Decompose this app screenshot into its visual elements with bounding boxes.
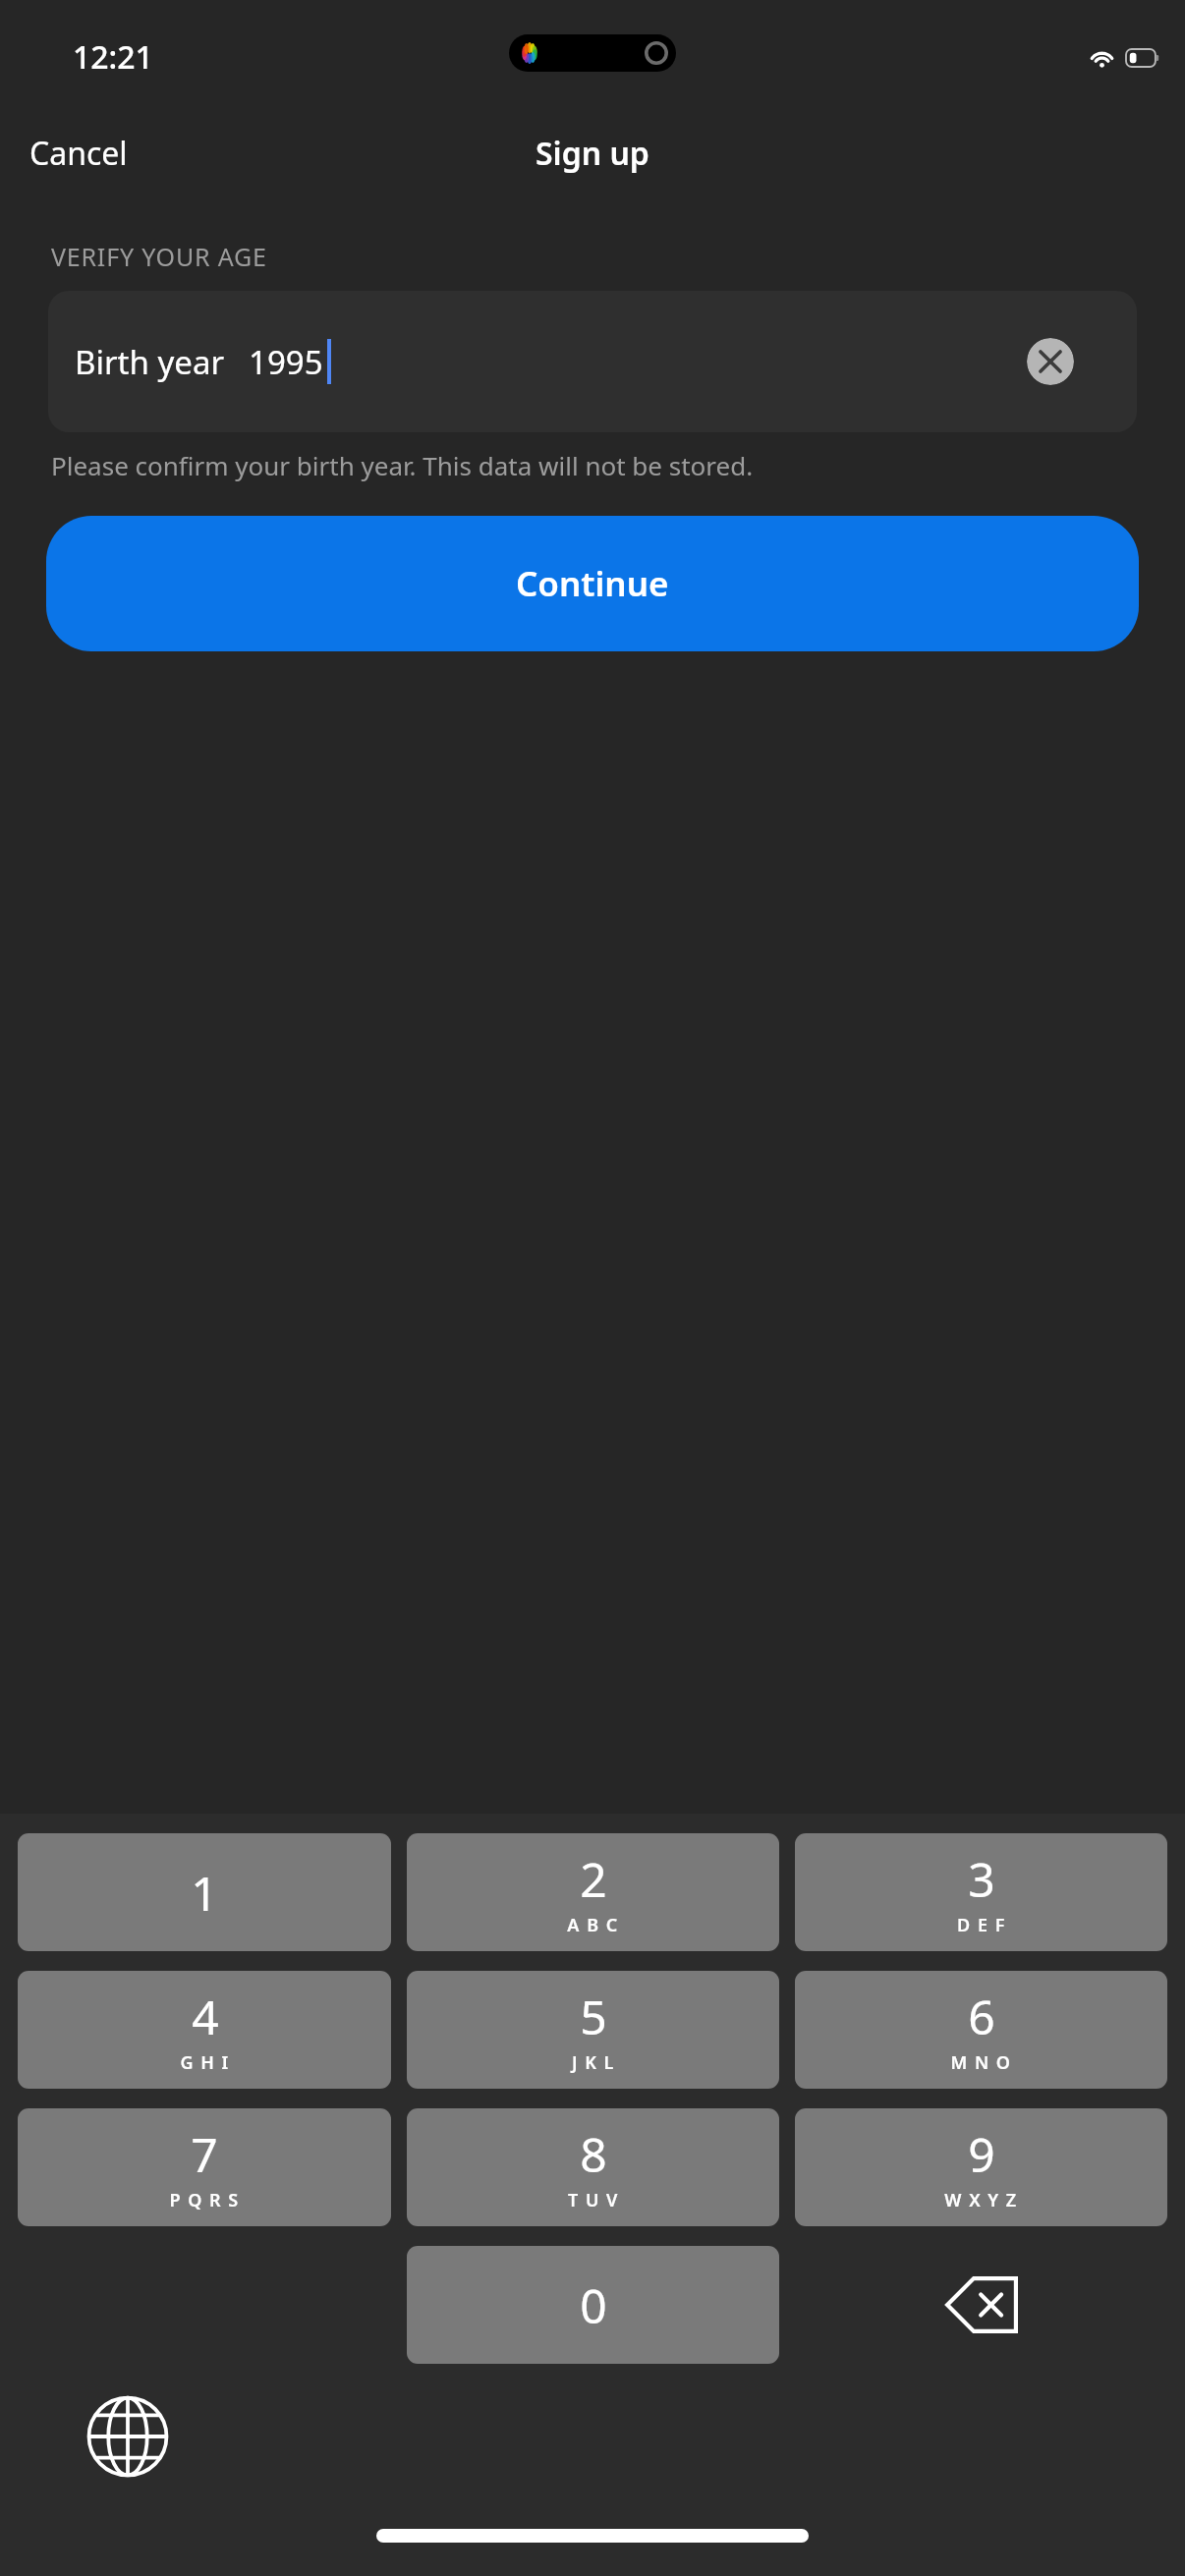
staticText: 4 <box>192 1985 219 2048</box>
button[interactable]: 3 <box>795 1833 1167 1951</box>
button[interactable]: 5 <box>407 1971 779 2089</box>
button[interactable]: 8 <box>407 2108 779 2226</box>
staticText: J K L <box>572 2050 615 2075</box>
button[interactable]: 0 <box>407 2246 779 2364</box>
button[interactable]: 9 <box>795 2108 1167 2226</box>
staticText: Cancel <box>29 132 128 175</box>
button[interactable]: Clear text <box>1027 338 1074 385</box>
button[interactable]: Change keyboard language <box>85 2393 171 2480</box>
button[interactable]: 4 <box>18 1971 391 2089</box>
staticText: Birth year <box>75 340 225 384</box>
button[interactable]: 6 <box>795 1971 1167 2089</box>
staticText: Please confirm your birth year. This dat… <box>51 448 754 482</box>
button[interactable]: 1 <box>18 1833 391 1951</box>
staticText: 2 <box>580 1847 607 1911</box>
staticText: 1 <box>191 1861 218 1925</box>
staticText: P Q R S <box>169 2188 240 2212</box>
staticText: T U V <box>568 2188 619 2212</box>
staticText: D E F <box>957 1913 1006 1937</box>
staticText: G H I <box>180 2050 230 2075</box>
staticText: M N O <box>950 2050 1012 2075</box>
staticText: Continue <box>516 560 669 607</box>
staticText: 0 <box>580 2273 607 2337</box>
staticText: 7 <box>191 2122 218 2186</box>
staticText: VERIFY YOUR AGE <box>51 240 267 273</box>
staticText: 1995 <box>249 340 323 384</box>
staticText: Sign up <box>536 132 649 175</box>
staticText: 9 <box>968 2122 995 2186</box>
staticText: 5 <box>580 1985 607 2048</box>
button[interactable]: Continue <box>46 516 1139 651</box>
staticText: 8 <box>580 2122 607 2186</box>
staticText: 3 <box>968 1847 995 1911</box>
button[interactable]: Birth year <box>48 291 1137 432</box>
staticText: 6 <box>968 1985 995 2048</box>
button[interactable]: 7 <box>18 2108 391 2226</box>
button[interactable]: Delete <box>795 2246 1167 2364</box>
button[interactable]: 2 <box>407 1833 779 1951</box>
button[interactable]: Cancel <box>14 122 143 185</box>
staticText: W X Y Z <box>944 2188 1018 2212</box>
staticText: A B C <box>567 1913 619 1937</box>
staticText: 12:21 <box>73 35 153 79</box>
